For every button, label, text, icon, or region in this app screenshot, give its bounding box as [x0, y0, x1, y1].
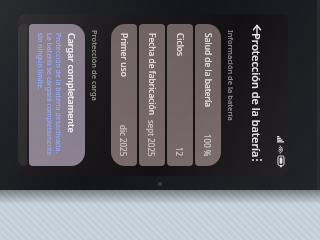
button[interactable]: Carga inteligente: [18, 24, 27, 166]
staticText: Cargar completamente: [66, 33, 78, 133]
button[interactable]: Fecha de fabricación: [139, 24, 165, 166]
staticText: Primer uso: [118, 33, 130, 77]
staticText: 12: [174, 147, 185, 157]
button[interactable]: Primer uso: [111, 24, 137, 166]
button[interactable]: Cargar completamente: [29, 24, 85, 166]
staticText: sept 2025: [146, 120, 157, 157]
button[interactable]: Salud de la batería: [195, 24, 221, 166]
staticText: Información de la batería: [226, 30, 236, 121]
button[interactable]: Más opciones: [245, 148, 269, 172]
staticText: Protección de carga: [90, 30, 100, 101]
staticText: Protección de la batería: [249, 33, 264, 158]
staticText: Protección de la batería desactivada. La…: [36, 33, 63, 157]
staticText: dic 2025: [118, 125, 129, 157]
staticText: Ciclos: [174, 33, 186, 57]
staticText: Salud de la batería: [202, 33, 214, 108]
staticText: 100 %: [202, 134, 213, 157]
button[interactable]: Atrás: [245, 18, 269, 42]
staticText: Fecha de fabricación: [146, 33, 158, 115]
button[interactable]: Ciclos: [167, 24, 193, 166]
